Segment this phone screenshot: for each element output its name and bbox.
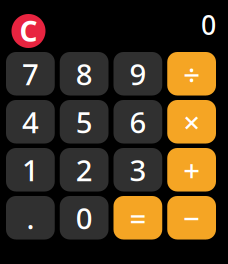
button[interactable]: 8 xyxy=(60,52,109,95)
staticText: 7 xyxy=(22,54,39,93)
button[interactable]: . xyxy=(6,196,55,239)
button[interactable]: ÷ xyxy=(167,52,216,95)
button[interactable]: × xyxy=(167,100,216,143)
button[interactable]: 5 xyxy=(60,100,109,143)
staticText: C xyxy=(19,12,37,50)
staticText: − xyxy=(183,198,200,237)
button[interactable]: 3 xyxy=(113,148,162,191)
button[interactable]: 6 xyxy=(113,100,162,143)
staticText: 0 xyxy=(201,7,216,42)
staticText: 6 xyxy=(129,102,146,141)
staticText: . xyxy=(26,198,34,237)
button[interactable]: 9 xyxy=(113,52,162,95)
staticText: 3 xyxy=(129,150,146,189)
staticText: 4 xyxy=(22,102,39,141)
staticText: 9 xyxy=(129,54,146,93)
button[interactable]: − xyxy=(167,196,216,239)
staticText: × xyxy=(183,102,200,141)
staticText: = xyxy=(129,198,146,237)
button[interactable]: = xyxy=(113,196,162,239)
button[interactable]: + xyxy=(167,148,216,191)
staticText: 1 xyxy=(22,150,39,189)
button[interactable]: 4 xyxy=(6,100,55,143)
staticText: + xyxy=(183,150,200,189)
staticText: 5 xyxy=(76,102,93,141)
staticText: ÷ xyxy=(183,54,200,93)
staticText: 8 xyxy=(76,54,93,93)
button[interactable]: 2 xyxy=(60,148,109,191)
staticText: 0 xyxy=(76,198,93,237)
staticText: 2 xyxy=(76,150,93,189)
button[interactable]: Clear xyxy=(11,14,45,48)
button[interactable]: 0 xyxy=(60,196,109,239)
button[interactable]: 1 xyxy=(6,148,55,191)
button[interactable]: 7 xyxy=(6,52,55,95)
